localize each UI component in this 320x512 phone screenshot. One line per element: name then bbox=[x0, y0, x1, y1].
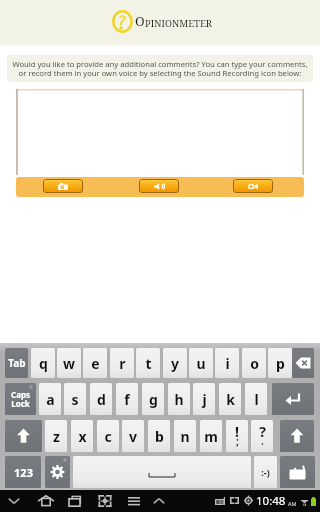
staticText: w bbox=[63, 354, 75, 373]
button[interactable]: z bbox=[45, 420, 67, 452]
button[interactable]: Choose input method bbox=[94, 490, 116, 512]
staticText: c bbox=[104, 427, 112, 446]
button[interactable]: x bbox=[71, 420, 93, 452]
staticText: p bbox=[276, 354, 285, 373]
staticText: Caps Lock bbox=[11, 389, 30, 410]
staticText: v bbox=[129, 427, 137, 446]
staticText: o bbox=[250, 354, 259, 373]
button[interactable]: ? bbox=[251, 420, 273, 452]
button[interactable]: Home bbox=[35, 490, 57, 512]
button[interactable]: o bbox=[242, 348, 266, 378]
button[interactable]: b bbox=[148, 420, 170, 452]
button[interactable]: g bbox=[142, 383, 164, 415]
button[interactable]: f bbox=[116, 383, 138, 415]
button[interactable]: r bbox=[110, 348, 134, 378]
button[interactable]: w bbox=[57, 348, 81, 378]
button[interactable]: a bbox=[39, 383, 61, 415]
button[interactable]: s bbox=[64, 383, 86, 415]
button[interactable] bbox=[280, 420, 314, 452]
button[interactable]: Caps Lock bbox=[5, 383, 36, 415]
staticText: s bbox=[71, 390, 79, 409]
staticText: Would you like to provide any additional… bbox=[7, 59, 313, 78]
staticText: u bbox=[196, 354, 206, 373]
staticText: z bbox=[53, 427, 60, 446]
staticText: x bbox=[78, 427, 87, 446]
staticText: r bbox=[119, 354, 126, 373]
staticText: h bbox=[174, 390, 184, 409]
button[interactable]: Tab bbox=[5, 348, 28, 378]
staticText: k bbox=[226, 390, 235, 409]
button[interactable]: j bbox=[193, 383, 215, 415]
button[interactable] bbox=[292, 348, 314, 378]
button[interactable]: c bbox=[97, 420, 119, 452]
staticText: ? bbox=[259, 422, 266, 441]
button[interactable]: v bbox=[122, 420, 144, 452]
button[interactable] bbox=[272, 383, 314, 415]
button[interactable]: d bbox=[90, 383, 112, 415]
button[interactable]: Hide keyboard bbox=[3, 490, 25, 512]
staticText: t bbox=[145, 354, 152, 373]
button[interactable]: m bbox=[200, 420, 222, 452]
button[interactable]: ! bbox=[226, 420, 248, 452]
staticText: e bbox=[91, 354, 100, 373]
button[interactable]: Expand bbox=[148, 490, 170, 512]
staticText: i bbox=[225, 354, 230, 373]
staticText: AM bbox=[288, 500, 297, 507]
button[interactable]: Comment text field bbox=[16, 89, 304, 175]
button[interactable]: u bbox=[189, 348, 213, 378]
button[interactable]: n bbox=[174, 420, 196, 452]
button[interactable]: Take photo bbox=[43, 179, 83, 193]
button[interactable]: q bbox=[31, 348, 55, 378]
staticText: ! bbox=[235, 422, 239, 441]
staticText: 123 bbox=[14, 465, 33, 480]
button[interactable]: y bbox=[163, 348, 187, 378]
button[interactable]: 123 bbox=[5, 456, 41, 488]
button[interactable]: Recent apps bbox=[64, 490, 86, 512]
button[interactable]: Record video bbox=[233, 179, 273, 193]
staticText: m bbox=[204, 427, 218, 446]
button[interactable]: :-) bbox=[254, 456, 277, 488]
staticText: O bbox=[135, 12, 145, 30]
button[interactable] bbox=[280, 456, 315, 488]
button[interactable]: h bbox=[168, 383, 190, 415]
staticText: Tab bbox=[8, 356, 26, 370]
button[interactable]: e bbox=[83, 348, 107, 378]
staticText: 10:48 bbox=[256, 493, 286, 509]
staticText: :-) bbox=[261, 466, 270, 478]
staticText: q bbox=[39, 354, 48, 373]
staticText: n bbox=[180, 427, 190, 446]
staticText: . bbox=[261, 434, 264, 448]
button[interactable]: l bbox=[245, 383, 267, 415]
button[interactable]: p bbox=[268, 348, 292, 378]
button[interactable] bbox=[45, 456, 70, 488]
button[interactable]: t bbox=[136, 348, 160, 378]
staticText: y bbox=[171, 354, 179, 373]
staticText: ; bbox=[236, 434, 239, 448]
staticText: PINIONMETER bbox=[145, 17, 213, 30]
staticText: d bbox=[97, 390, 106, 409]
staticText: f bbox=[124, 390, 130, 409]
staticText: l bbox=[254, 390, 259, 409]
staticText: g bbox=[149, 390, 158, 409]
button[interactable] bbox=[5, 420, 42, 452]
button[interactable]: Menu bbox=[123, 490, 145, 512]
staticText: a bbox=[46, 390, 55, 409]
button[interactable]: k bbox=[219, 383, 241, 415]
staticText: b bbox=[155, 427, 164, 446]
staticText: j bbox=[202, 390, 207, 409]
button[interactable] bbox=[73, 456, 251, 488]
button[interactable]: i bbox=[215, 348, 239, 378]
button[interactable]: Record audio bbox=[139, 179, 179, 193]
